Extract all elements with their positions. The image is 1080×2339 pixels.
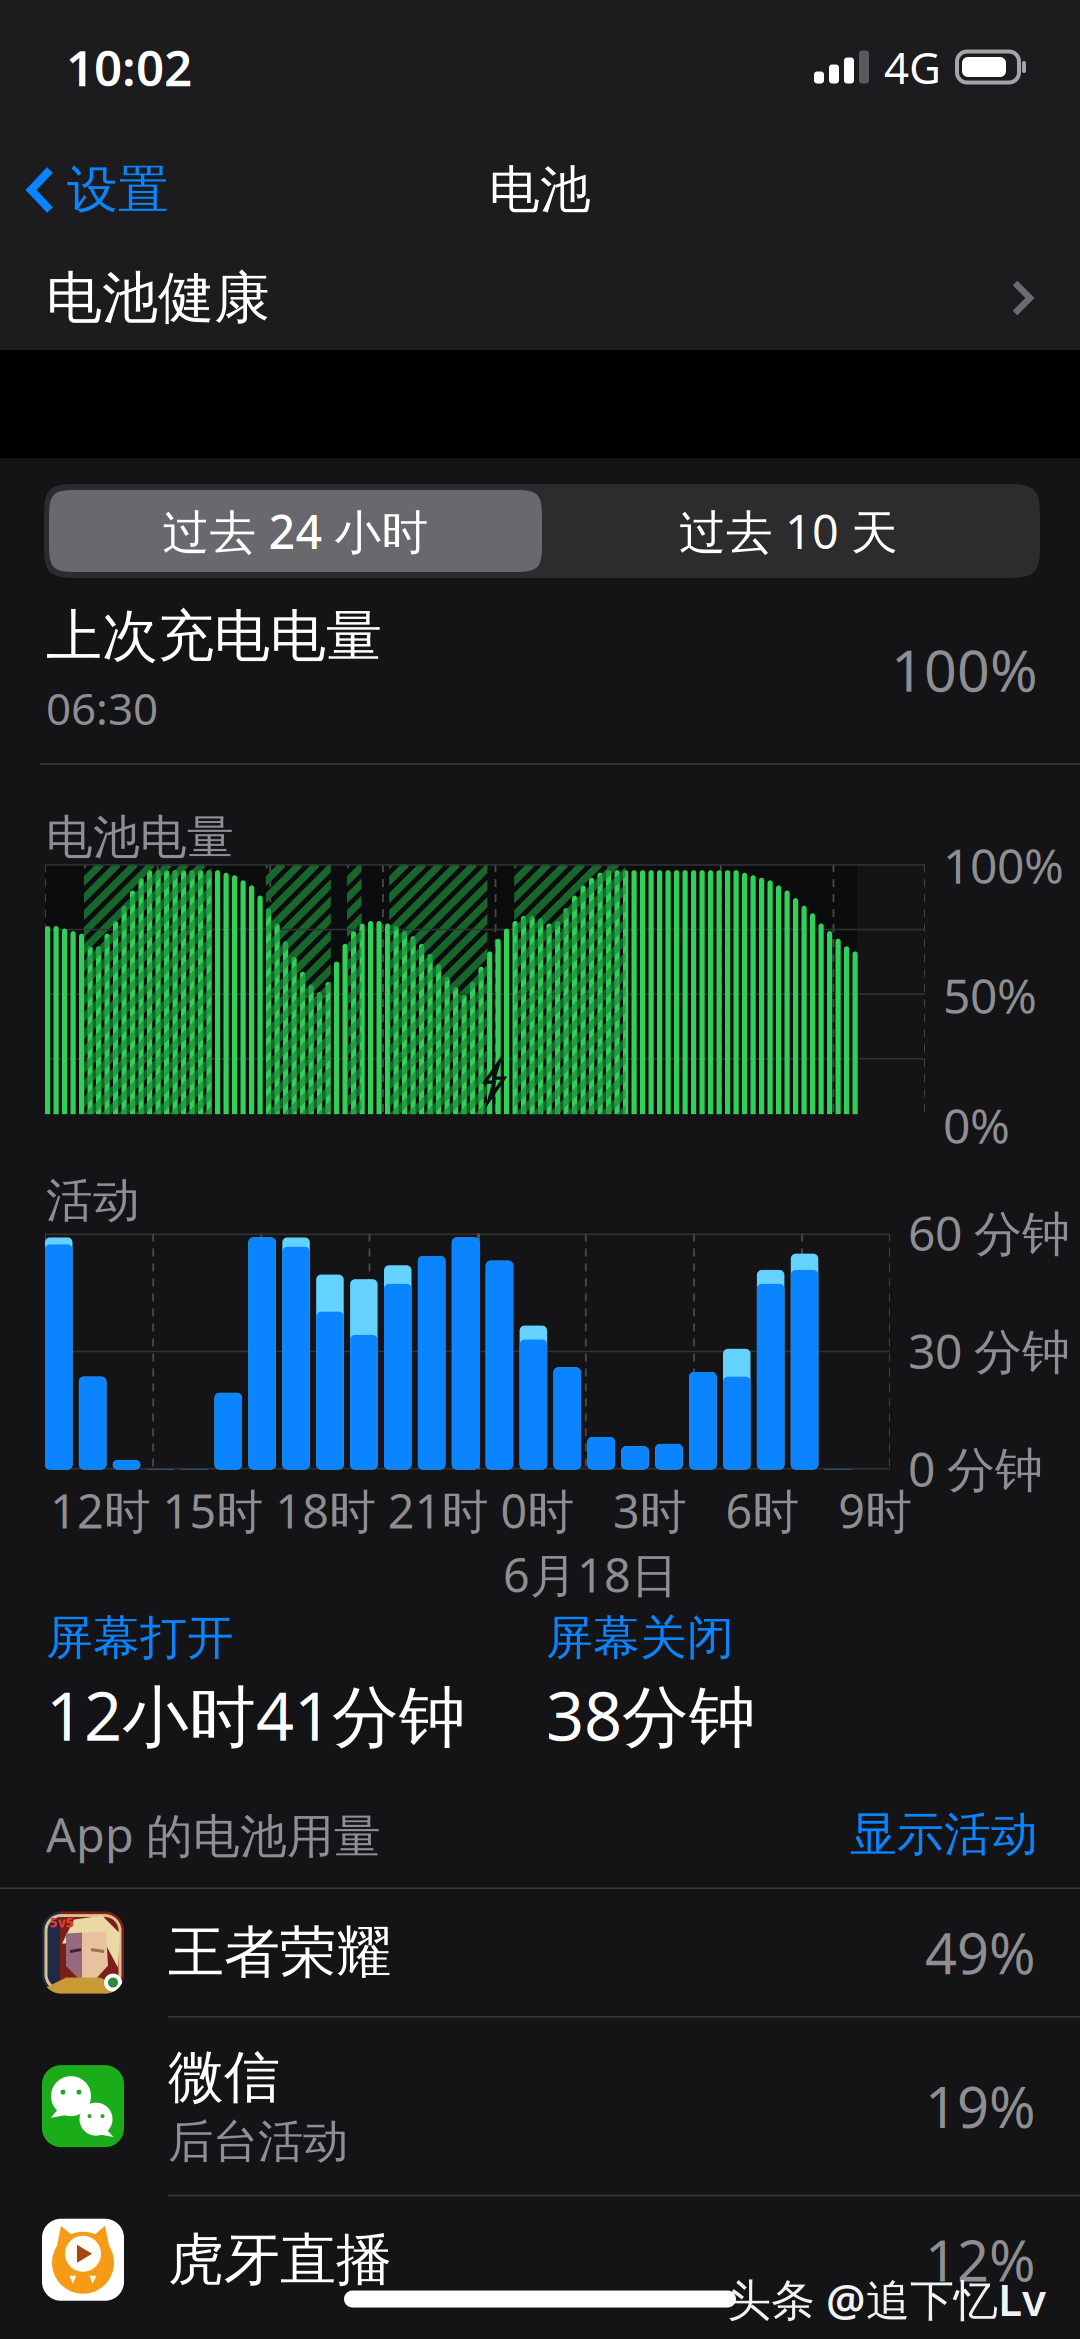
staticText: 100% — [891, 631, 1038, 708]
staticText: 6时 — [726, 1479, 800, 1541]
staticText: 9时 — [838, 1479, 912, 1541]
staticText: 12时 — [50, 1479, 151, 1541]
staticText: 活动 — [46, 1172, 140, 1229]
staticText: 电池健康 — [46, 264, 270, 332]
staticText: 显示活动 — [850, 1806, 1038, 1863]
staticText: 过去 10 天 — [679, 500, 898, 562]
button[interactable]: 5v5 — [0, 1889, 1080, 2018]
staticText: 15时 — [163, 1479, 264, 1541]
staticText: 0时 — [500, 1479, 574, 1541]
staticText: 3时 — [613, 1479, 687, 1541]
staticText: 0% — [943, 1093, 1010, 1157]
button[interactable]: 过去 24 小时 — [49, 490, 542, 572]
staticText: 后台活动 — [168, 2114, 348, 2169]
staticText: 30 分钟 — [908, 1319, 1070, 1382]
staticText: 头条 @追下忆Lv — [727, 2270, 1046, 2328]
staticText: 60 分钟 — [908, 1201, 1070, 1264]
staticText: 虎牙直播 — [168, 2225, 392, 2294]
staticText: 5v5 — [50, 1914, 74, 1931]
staticText: 12小时41分钟 — [46, 1671, 466, 1759]
staticText: 6月18日 — [503, 1543, 678, 1605]
staticText: 屏幕关闭 — [546, 1609, 734, 1667]
staticText: 19% — [925, 2069, 1036, 2143]
staticText: 微信 — [168, 2043, 280, 2112]
staticText: 18时 — [275, 1479, 376, 1541]
staticText: App 的电池用量 — [46, 1803, 381, 1865]
staticText: 50% — [943, 963, 1037, 1027]
staticText: 过去 24 小时 — [162, 500, 428, 562]
button[interactable]: 显示活动 — [850, 1806, 1038, 1863]
button[interactable]: 过去 10 天 — [542, 490, 1035, 572]
staticText: 设置 — [67, 159, 169, 221]
staticText: 4G — [884, 38, 941, 96]
staticText: 21时 — [388, 1479, 489, 1541]
staticText: 上次充电电量 — [46, 602, 382, 671]
button[interactable]: 虎牙直播 — [0, 2196, 1080, 2323]
button[interactable]: 微信 — [0, 2018, 1080, 2196]
staticText: 电池 — [489, 159, 591, 221]
staticText: 屏幕打开 — [46, 1609, 234, 1667]
staticText: 10:02 — [66, 34, 192, 100]
button[interactable]: 电池健康 — [0, 246, 1080, 350]
staticText: 王者荣耀 — [168, 1918, 392, 1987]
staticText: 电池电量 — [46, 809, 234, 866]
staticText: 06:30 — [46, 679, 158, 737]
staticText: 49% — [925, 1915, 1036, 1990]
staticText: 0 分钟 — [908, 1437, 1043, 1500]
button[interactable]: 设置 — [0, 134, 187, 246]
staticText: 38分钟 — [546, 1671, 756, 1759]
staticText: 100% — [943, 833, 1064, 897]
staticText: 12% — [925, 2223, 1036, 2297]
